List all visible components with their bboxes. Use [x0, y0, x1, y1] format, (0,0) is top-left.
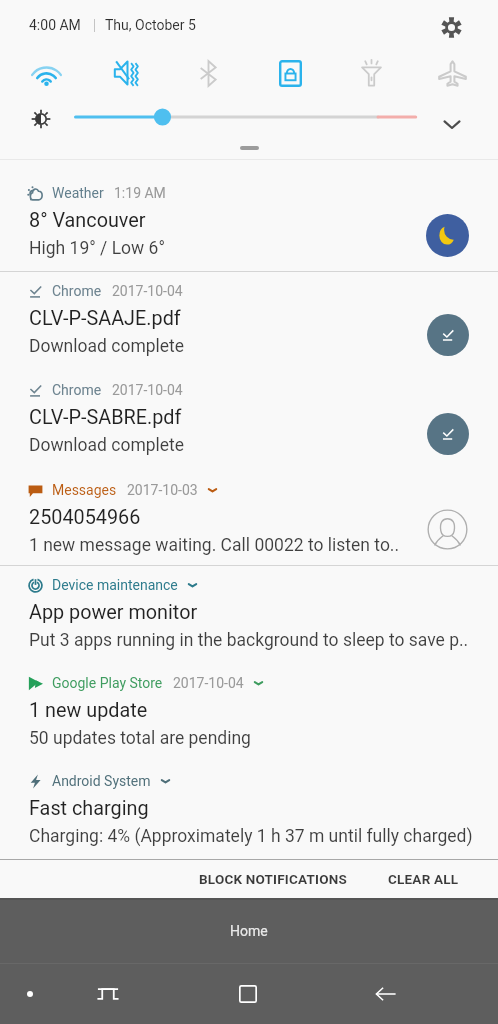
staticText: CLEAR ALL	[388, 871, 459, 887]
staticText: 2017-10-04	[112, 283, 183, 299]
staticText: Device maintenance	[52, 577, 178, 593]
button[interactable]: Airplane mode	[428, 49, 476, 97]
button[interactable]: Recent apps	[0, 964, 60, 1024]
staticText: Put 3 apps running in the background to …	[29, 630, 469, 651]
staticText: Android System	[52, 773, 151, 789]
staticText: 2017-10-03	[127, 482, 198, 498]
button[interactable]: Expand quick settings	[433, 105, 471, 143]
button[interactable]: Android System	[0, 759, 498, 853]
staticText: Messages	[52, 482, 117, 498]
staticText: 8° Vancouver	[29, 209, 146, 232]
staticText: Charging: 4% (Approximately 1 h 37 m unt…	[29, 826, 473, 847]
button[interactable]: Wi-Fi	[22, 49, 70, 97]
staticText: App power monitor	[29, 601, 198, 624]
button[interactable]: Settings	[437, 13, 465, 41]
staticText: Home	[230, 923, 268, 939]
button[interactable]: Chrome	[0, 269, 498, 363]
button[interactable]: Google Play Store	[0, 661, 498, 755]
button[interactable]: Screen rotation lock	[266, 49, 314, 97]
button[interactable]: Multi window	[78, 964, 138, 1024]
staticText: 2504054966	[29, 506, 141, 529]
staticText: 4:00 AM	[29, 17, 81, 33]
button[interactable]: Home	[218, 964, 278, 1024]
staticText: High 19° / Low 6°	[29, 238, 165, 259]
button[interactable]: Bluetooth	[184, 49, 232, 97]
staticText: 1:19 AM	[114, 185, 166, 201]
staticText: Fast charging	[29, 797, 149, 820]
staticText: Google Play Store	[52, 675, 163, 691]
button[interactable]: Sound mode	[103, 49, 151, 97]
button[interactable]: Device maintenance	[0, 563, 498, 657]
staticText: Chrome	[52, 382, 102, 398]
staticText: 2017-10-04	[173, 675, 244, 691]
staticText: CLV-P-SAAJE.pdf	[29, 307, 181, 330]
button[interactable]: Weather	[0, 171, 498, 265]
button[interactable]: Messages	[0, 468, 498, 562]
button[interactable]: Chrome	[0, 368, 498, 462]
button[interactable]: Flashlight	[347, 49, 395, 97]
staticText: 1 new update	[29, 699, 148, 722]
staticText: CLV-P-SABRE.pdf	[29, 406, 182, 429]
staticText: 2017-10-04	[112, 382, 183, 398]
button[interactable]: CLEAR ALL	[378, 863, 469, 895]
staticText: 50 updates total are pending	[29, 728, 251, 749]
staticText: Thu, October 5	[105, 17, 196, 33]
staticText: BLOCK NOTIFICATIONS	[199, 871, 347, 887]
staticText: Chrome	[52, 283, 102, 299]
button[interactable]: Back	[356, 964, 416, 1024]
button[interactable]: BLOCK NOTIFICATIONS	[189, 863, 357, 895]
staticText: 1 new message waiting. Call 00022 to lis…	[29, 535, 400, 556]
staticText: Weather	[52, 185, 104, 201]
staticText: Download complete	[29, 336, 185, 357]
staticText: Download complete	[29, 435, 185, 456]
